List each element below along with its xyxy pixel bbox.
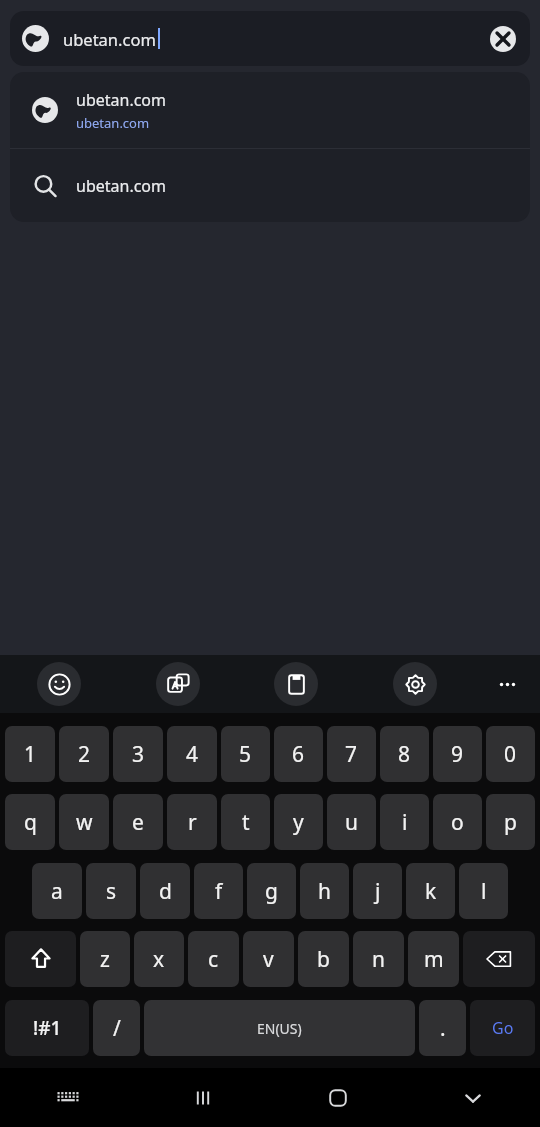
button[interactable]: .: [419, 1000, 466, 1056]
button[interactable]: m: [408, 931, 459, 987]
button[interactable]: p: [486, 794, 535, 850]
button[interactable]: EN(US): [144, 1000, 415, 1056]
button[interactable]: 7: [327, 726, 376, 782]
staticText: ubetan.com: [63, 28, 156, 50]
staticText: x: [153, 945, 165, 974]
staticText: u: [345, 808, 358, 837]
button[interactable]: Backspace: [463, 931, 535, 987]
staticText: ubetan.com: [76, 89, 167, 111]
button[interactable]: q: [5, 794, 55, 850]
button[interactable]: y: [274, 794, 323, 850]
button[interactable]: h: [300, 863, 349, 919]
button[interactable]: 8: [380, 726, 429, 782]
staticText: w: [76, 808, 93, 837]
button[interactable]: 5: [221, 726, 270, 782]
button[interactable]: e: [113, 794, 163, 850]
button[interactable]: Clipboard: [274, 662, 318, 706]
staticText: m: [424, 945, 444, 974]
button[interactable]: d: [140, 863, 190, 919]
staticText: t: [242, 808, 250, 837]
button[interactable]: ubetan.com: [10, 149, 530, 222]
staticText: s: [106, 877, 117, 906]
button[interactable]: /: [93, 1000, 140, 1056]
staticText: q: [24, 808, 37, 837]
button[interactable]: n: [353, 931, 404, 987]
button[interactable]: Back: [405, 1068, 540, 1127]
staticText: 7: [345, 740, 358, 769]
button[interactable]: 2: [59, 726, 109, 782]
staticText: 9: [451, 740, 464, 769]
staticText: e: [132, 808, 144, 837]
button[interactable]: j: [353, 863, 402, 919]
button[interactable]: z: [80, 931, 130, 987]
staticText: r: [188, 808, 197, 837]
staticText: EN(US): [257, 1019, 302, 1038]
staticText: ubetan.com: [76, 175, 167, 197]
button[interactable]: Recent apps: [135, 1068, 270, 1127]
button[interactable]: Keyboard settings: [393, 662, 437, 706]
button[interactable]: ubetan.com: [10, 11, 530, 66]
button[interactable]: Go: [470, 1000, 535, 1056]
button[interactable]: 0: [486, 726, 535, 782]
button[interactable]: u: [327, 794, 376, 850]
button[interactable]: c: [188, 931, 239, 987]
staticText: k: [425, 877, 437, 906]
staticText: l: [481, 877, 487, 906]
button[interactable]: Clear text: [484, 20, 522, 58]
staticText: 1: [24, 740, 37, 769]
button[interactable]: 1: [5, 726, 55, 782]
staticText: b: [317, 945, 330, 974]
staticText: !#1: [33, 1015, 62, 1041]
button[interactable]: a: [32, 863, 82, 919]
staticText: 8: [398, 740, 411, 769]
button[interactable]: k: [406, 863, 455, 919]
staticText: f: [215, 877, 223, 906]
button[interactable]: Emoji: [37, 662, 81, 706]
staticText: 2: [78, 740, 91, 769]
button[interactable]: o: [433, 794, 482, 850]
button[interactable]: t: [221, 794, 270, 850]
staticText: v: [263, 945, 274, 974]
button[interactable]: g: [247, 863, 296, 919]
staticText: 0: [504, 740, 517, 769]
button[interactable]: b: [298, 931, 349, 987]
button[interactable]: 3: [113, 726, 163, 782]
button[interactable]: More options: [485, 662, 529, 706]
staticText: c: [208, 945, 219, 974]
button[interactable]: 4: [167, 726, 217, 782]
staticText: g: [265, 877, 278, 906]
button[interactable]: Translate: [156, 662, 200, 706]
staticText: o: [451, 808, 464, 837]
staticText: /: [113, 1014, 121, 1043]
button[interactable]: x: [134, 931, 184, 987]
button[interactable]: ubetan.com: [10, 72, 530, 148]
button[interactable]: f: [194, 863, 243, 919]
button[interactable]: s: [86, 863, 136, 919]
staticText: 6: [292, 740, 305, 769]
staticText: i: [402, 808, 408, 837]
staticText: d: [159, 877, 172, 906]
staticText: p: [504, 808, 517, 837]
button[interactable]: v: [243, 931, 294, 987]
staticText: ubetan.com: [76, 114, 150, 132]
button[interactable]: 9: [433, 726, 482, 782]
button[interactable]: Shift: [5, 931, 76, 987]
staticText: z: [100, 945, 110, 974]
staticText: a: [51, 877, 63, 906]
button[interactable]: w: [59, 794, 109, 850]
button[interactable]: r: [167, 794, 217, 850]
staticText: Go: [492, 1017, 514, 1039]
staticText: 5: [239, 740, 252, 769]
staticText: y: [293, 808, 304, 837]
staticText: 3: [132, 740, 145, 769]
button[interactable]: Hide keyboard: [0, 1068, 135, 1127]
staticText: .: [440, 1014, 446, 1043]
button[interactable]: l: [459, 863, 508, 919]
staticText: n: [372, 945, 385, 974]
staticText: 4: [186, 740, 199, 769]
button[interactable]: i: [380, 794, 429, 850]
staticText: h: [318, 877, 331, 906]
button[interactable]: !#1: [5, 1000, 89, 1056]
button[interactable]: 6: [274, 726, 323, 782]
button[interactable]: Home: [270, 1068, 405, 1127]
